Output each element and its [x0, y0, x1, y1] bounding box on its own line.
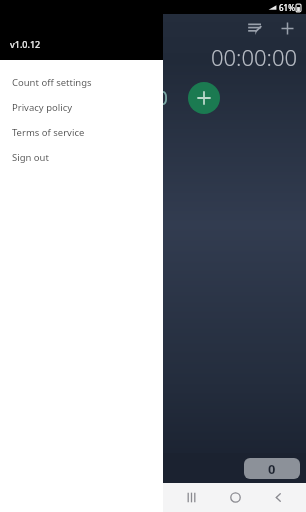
staticText: Privacy policy: [12, 101, 73, 114]
button[interactable]: Count off settings: [0, 70, 163, 95]
staticText: 61%: [279, 2, 295, 13]
staticText: Terms of service: [12, 126, 85, 139]
button[interactable]: Sign out: [0, 145, 163, 170]
staticText: Sign out: [12, 151, 49, 164]
button[interactable]: Edit list: [242, 15, 268, 41]
staticText: 00:00:00: [211, 42, 298, 72]
button[interactable]: Terms of service: [0, 120, 163, 145]
button[interactable]: Privacy policy: [0, 95, 163, 120]
staticText: v1.0.12: [10, 38, 41, 50]
button[interactable]: Add: [274, 15, 300, 41]
button[interactable]: Back: [263, 483, 293, 512]
button[interactable]: Recents: [176, 483, 206, 512]
staticText: 0: [157, 85, 168, 111]
button[interactable]: Home: [220, 483, 250, 512]
staticText: 0: [268, 460, 276, 478]
staticText: Count off settings: [12, 76, 92, 89]
button[interactable]: 0: [244, 458, 300, 479]
button[interactable]: Increment: [188, 82, 220, 114]
